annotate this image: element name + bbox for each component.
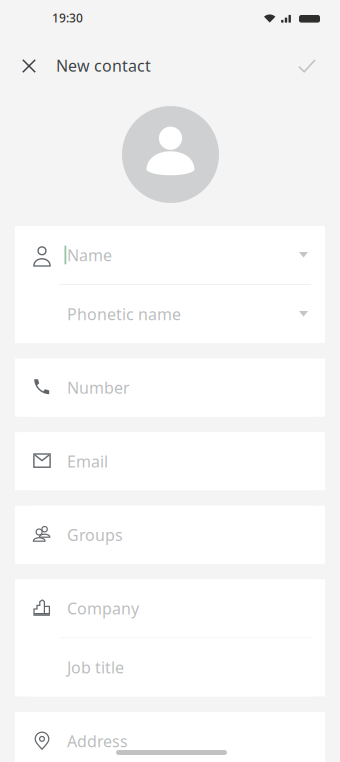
staticText: New contact [56, 55, 151, 76]
staticText: Name [67, 244, 112, 266]
staticText: 19:30 [52, 10, 83, 26]
button[interactable]: Email [15, 432, 325, 490]
button[interactable]: Company [15, 579, 325, 637]
button[interactable]: Add photo [122, 106, 219, 203]
staticText: Job title [67, 657, 124, 678]
staticText: Groups [67, 524, 123, 545]
button[interactable]: Close [7, 44, 51, 88]
button[interactable]: Groups [15, 506, 325, 564]
button[interactable]: Save [285, 44, 329, 88]
staticText: Address [67, 730, 128, 752]
staticText: Phonetic name [67, 303, 181, 325]
button[interactable]: Number [15, 359, 325, 417]
button[interactable]: Job title [15, 638, 325, 696]
button[interactable]: Phonetic name [15, 285, 325, 343]
staticText: Company [67, 598, 139, 619]
button[interactable]: Address [15, 712, 325, 762]
staticText: Email [67, 451, 108, 472]
button[interactable]: Name [15, 226, 325, 284]
staticText: Number [67, 377, 130, 398]
